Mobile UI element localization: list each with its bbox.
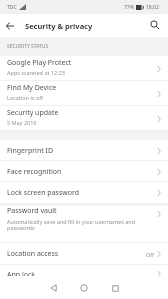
staticText: App lock — [7, 270, 36, 276]
button[interactable] — [5, 21, 15, 31]
staticText: Fingerprint ID — [7, 146, 54, 156]
button[interactable]: Location access — [0, 243, 168, 265]
staticText: Google Play Protect — [7, 58, 72, 68]
button[interactable]: Face recognition — [0, 161, 168, 182]
staticText: Location access — [7, 249, 59, 259]
button[interactable] — [73, 277, 95, 299]
button[interactable] — [104, 277, 126, 299]
staticText: Face recognition — [7, 167, 62, 177]
staticText: 5 May 2019 — [7, 119, 37, 126]
button[interactable] — [42, 277, 64, 299]
button[interactable]: Find My Device — [0, 81, 168, 106]
button[interactable]: Password vault — [0, 206, 168, 243]
staticText: Automatically save and fill in your user… — [7, 218, 136, 232]
staticText: Security update — [7, 108, 59, 118]
staticText: Apps scanned at 12:23 — [7, 69, 65, 76]
button[interactable] — [149, 20, 161, 30]
staticText: Off — [146, 251, 155, 258]
button[interactable]: Lock screen password — [0, 182, 168, 203]
staticText: Password vault — [7, 206, 57, 216]
staticText: Lock screen password — [7, 188, 80, 198]
staticText: Security & privacy — [25, 21, 93, 31]
button[interactable]: Fingerprint ID — [0, 140, 168, 161]
staticText: 18:02 — [146, 4, 159, 11]
staticText: Location is off — [7, 94, 44, 101]
staticText: Find My Device — [7, 83, 57, 93]
staticText: TDC — [7, 4, 17, 11]
staticText: 77% — [124, 4, 134, 11]
button[interactable]: Security update — [0, 106, 168, 131]
button[interactable]: Google Play Protect — [0, 56, 168, 81]
staticText: SECURITY STATUS — [7, 43, 49, 50]
